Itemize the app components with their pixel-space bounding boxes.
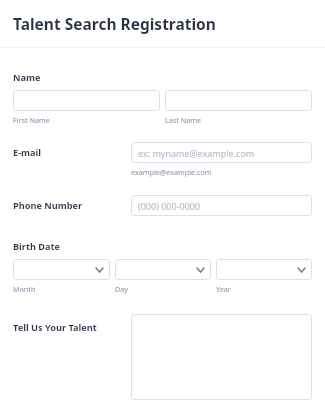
staticText: Name: [13, 71, 41, 84]
staticText: Phone Number: [13, 199, 83, 212]
button[interactable]: Month: [13, 259, 110, 280]
staticText: (000) 000-0000: [138, 200, 201, 212]
staticText: First Name: [13, 115, 50, 125]
button[interactable]: Tell Us Your Talent: [131, 314, 312, 400]
staticText: E-mail: [13, 146, 42, 159]
staticText: Last Name: [165, 115, 201, 125]
staticText: Talent Search Registration: [13, 13, 216, 34]
button[interactable]: Year: [216, 259, 312, 280]
button[interactable]: Last Name: [165, 90, 312, 111]
staticText: Birth Date: [13, 240, 61, 253]
button[interactable]: Day: [115, 259, 211, 280]
button[interactable]: E-mail: [131, 142, 312, 163]
staticText: Year: [216, 284, 231, 294]
button[interactable]: Phone Number: [131, 195, 312, 216]
staticText: ex: myname@example.com: [138, 147, 255, 159]
staticText: Tell Us Your Talent: [13, 321, 97, 334]
staticText: Month: [13, 284, 36, 294]
staticText: example@example.com: [131, 167, 212, 177]
button[interactable]: First Name: [13, 90, 160, 111]
staticText: Day: [115, 284, 128, 294]
